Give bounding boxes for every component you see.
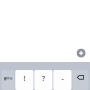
button[interactable]: #+= <box>1 70 14 90</box>
button[interactable]: Add <box>77 49 85 57</box>
staticText: ! <box>23 74 25 83</box>
staticText: ? <box>42 74 45 83</box>
button[interactable] <box>72 70 88 90</box>
button[interactable]: ! <box>15 70 33 90</box>
staticText: #+= <box>3 75 12 82</box>
button[interactable]: ? <box>34 70 52 90</box>
button[interactable]: - <box>53 70 71 90</box>
staticText: - <box>61 74 63 83</box>
